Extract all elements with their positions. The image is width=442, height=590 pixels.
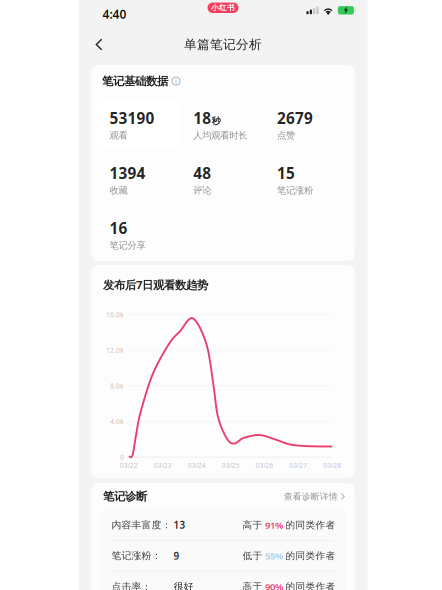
staticText: 人均观看时长 xyxy=(193,129,247,141)
staticText: 13 xyxy=(173,518,185,532)
staticText: 收藏 xyxy=(109,184,127,196)
staticText: 12.0k xyxy=(106,346,124,355)
staticText: 03/22 xyxy=(120,461,138,470)
staticText: 高于 xyxy=(242,581,262,590)
staticText: 15 xyxy=(277,162,295,183)
staticText: 查看诊断详情 xyxy=(284,491,338,502)
staticText: 16.0k xyxy=(106,310,124,319)
staticText: 评论 xyxy=(193,184,211,196)
staticText: 点赞 xyxy=(277,129,295,141)
staticText: 91% xyxy=(265,518,283,532)
staticText: 03/26 xyxy=(255,461,273,470)
staticText: 2679 xyxy=(277,107,313,128)
staticText: 48 xyxy=(193,162,211,183)
staticText: 很好 xyxy=(173,580,193,590)
button[interactable]: 查看诊断详情 xyxy=(284,491,345,502)
staticText: 笔记基础数据 xyxy=(102,74,168,88)
staticText: 笔记涨粉 xyxy=(277,184,313,196)
staticText: 秒 xyxy=(212,115,221,127)
staticText: 点击率： xyxy=(111,580,151,590)
staticText: 55% xyxy=(265,549,283,562)
staticText: 笔记诊断 xyxy=(103,489,147,504)
staticText: 90% xyxy=(265,580,283,590)
staticText: 1394 xyxy=(109,162,145,183)
staticText: 18 xyxy=(193,107,211,128)
staticText: 8.0k xyxy=(110,381,124,390)
staticText: 03/28 xyxy=(323,461,341,470)
staticText: 观看 xyxy=(109,129,127,141)
staticText: 发布后7日观看数趋势 xyxy=(103,277,208,292)
staticText: 的同类作者 xyxy=(285,581,335,590)
staticText: 4:40 xyxy=(102,6,126,22)
staticText: 高于 xyxy=(242,519,262,531)
staticText: 16 xyxy=(109,217,127,238)
staticText: 4.0k xyxy=(110,417,124,426)
staticText: 笔记涨粉： xyxy=(111,550,161,562)
staticText: 笔记分享 xyxy=(109,239,145,251)
staticText: 低于 xyxy=(242,550,262,562)
staticText: 53190 xyxy=(109,107,154,128)
staticText: 03/25 xyxy=(221,461,239,470)
staticText: 9 xyxy=(173,549,179,562)
staticText: 0 xyxy=(120,453,124,462)
staticText: 03/23 xyxy=(154,461,172,470)
staticText: 03/24 xyxy=(188,461,206,470)
staticText: 单篇笔记分析 xyxy=(184,36,262,52)
staticText: 小红书 xyxy=(211,3,235,13)
staticText: 的同类作者 xyxy=(285,550,335,562)
button[interactable]: Back xyxy=(78,30,114,59)
staticText: 内容丰富度： xyxy=(111,519,171,531)
staticText: i xyxy=(175,76,177,86)
staticText: 的同类作者 xyxy=(285,519,335,531)
staticText: 03/27 xyxy=(289,461,307,470)
